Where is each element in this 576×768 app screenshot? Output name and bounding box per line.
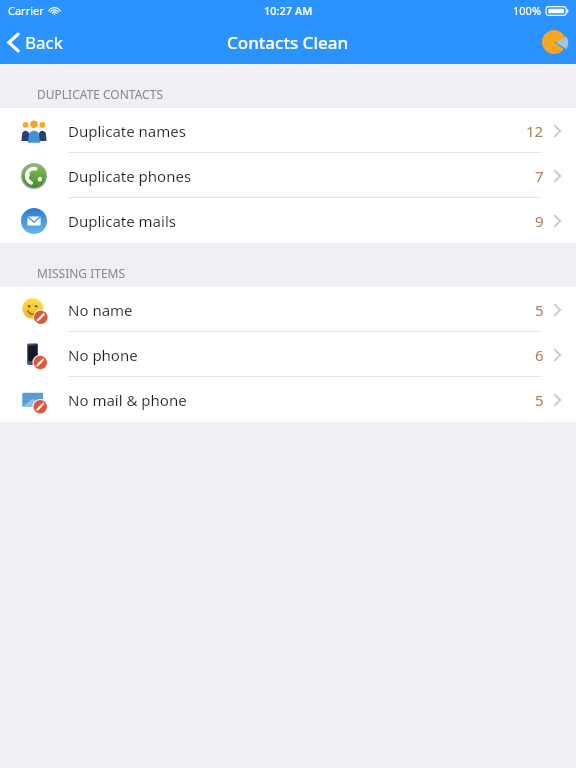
- button[interactable]: Back: [0, 25, 75, 60]
- button[interactable]: No name: [0, 287, 576, 332]
- staticText: 12: [526, 121, 544, 141]
- staticText: 10:27 AM: [264, 3, 313, 18]
- staticText: Carrier: [8, 3, 44, 18]
- button[interactable]: Duplicate mails: [0, 198, 576, 243]
- staticText: 5: [535, 300, 544, 320]
- staticText: 6: [535, 345, 544, 365]
- staticText: No mail & phone: [68, 390, 187, 410]
- staticText: 100%: [513, 3, 542, 18]
- staticText: 5: [535, 390, 544, 410]
- button[interactable]: Duplicate phones: [0, 153, 576, 198]
- staticText: 9: [535, 211, 544, 231]
- staticText: MISSING ITEMS: [37, 265, 126, 281]
- staticText: Contacts Clean: [227, 31, 349, 54]
- staticText: No name: [68, 300, 133, 320]
- staticText: 7: [535, 166, 544, 186]
- staticText: Back: [25, 31, 63, 54]
- staticText: Duplicate names: [68, 121, 186, 141]
- button[interactable]: No mail & phone: [0, 377, 576, 422]
- staticText: No phone: [68, 345, 138, 365]
- button[interactable]: No phone: [0, 332, 576, 377]
- button[interactable]: Statistics: [532, 24, 576, 60]
- staticText: DUPLICATE CONTACTS: [37, 86, 163, 102]
- staticText: Duplicate phones: [68, 166, 192, 186]
- button[interactable]: Duplicate names: [0, 108, 576, 153]
- staticText: Duplicate mails: [68, 211, 176, 231]
